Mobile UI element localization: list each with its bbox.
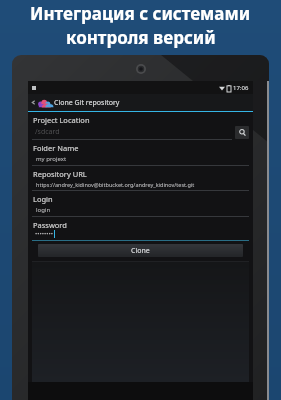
staticText: Repository URL: [33, 169, 87, 179]
button[interactable]: Navigate up: [28, 94, 253, 111]
staticText: ••••••••: [35, 230, 54, 238]
other: Navigate up: [31, 100, 36, 105]
staticText: Password: [33, 220, 67, 230]
staticText: Clone: [131, 246, 150, 256]
staticText: 17:06: [233, 84, 249, 92]
staticText: login: [36, 206, 51, 214]
staticText: https://andrey_kidinov@bitbucket.org/and…: [36, 181, 195, 188]
staticText: Login: [33, 194, 53, 204]
staticText: Clone Git repository: [54, 98, 120, 108]
staticText: контроля версий: [66, 26, 216, 49]
button[interactable]: Browse: [235, 126, 249, 139]
button[interactable]: Clone: [38, 244, 243, 257]
staticText: Project Location: [33, 115, 90, 125]
staticText: my projext: [36, 155, 67, 163]
staticText: /sdcard: [35, 127, 60, 137]
staticText: Интеграция с системами: [30, 2, 251, 25]
staticText: Folder Name: [33, 143, 79, 153]
